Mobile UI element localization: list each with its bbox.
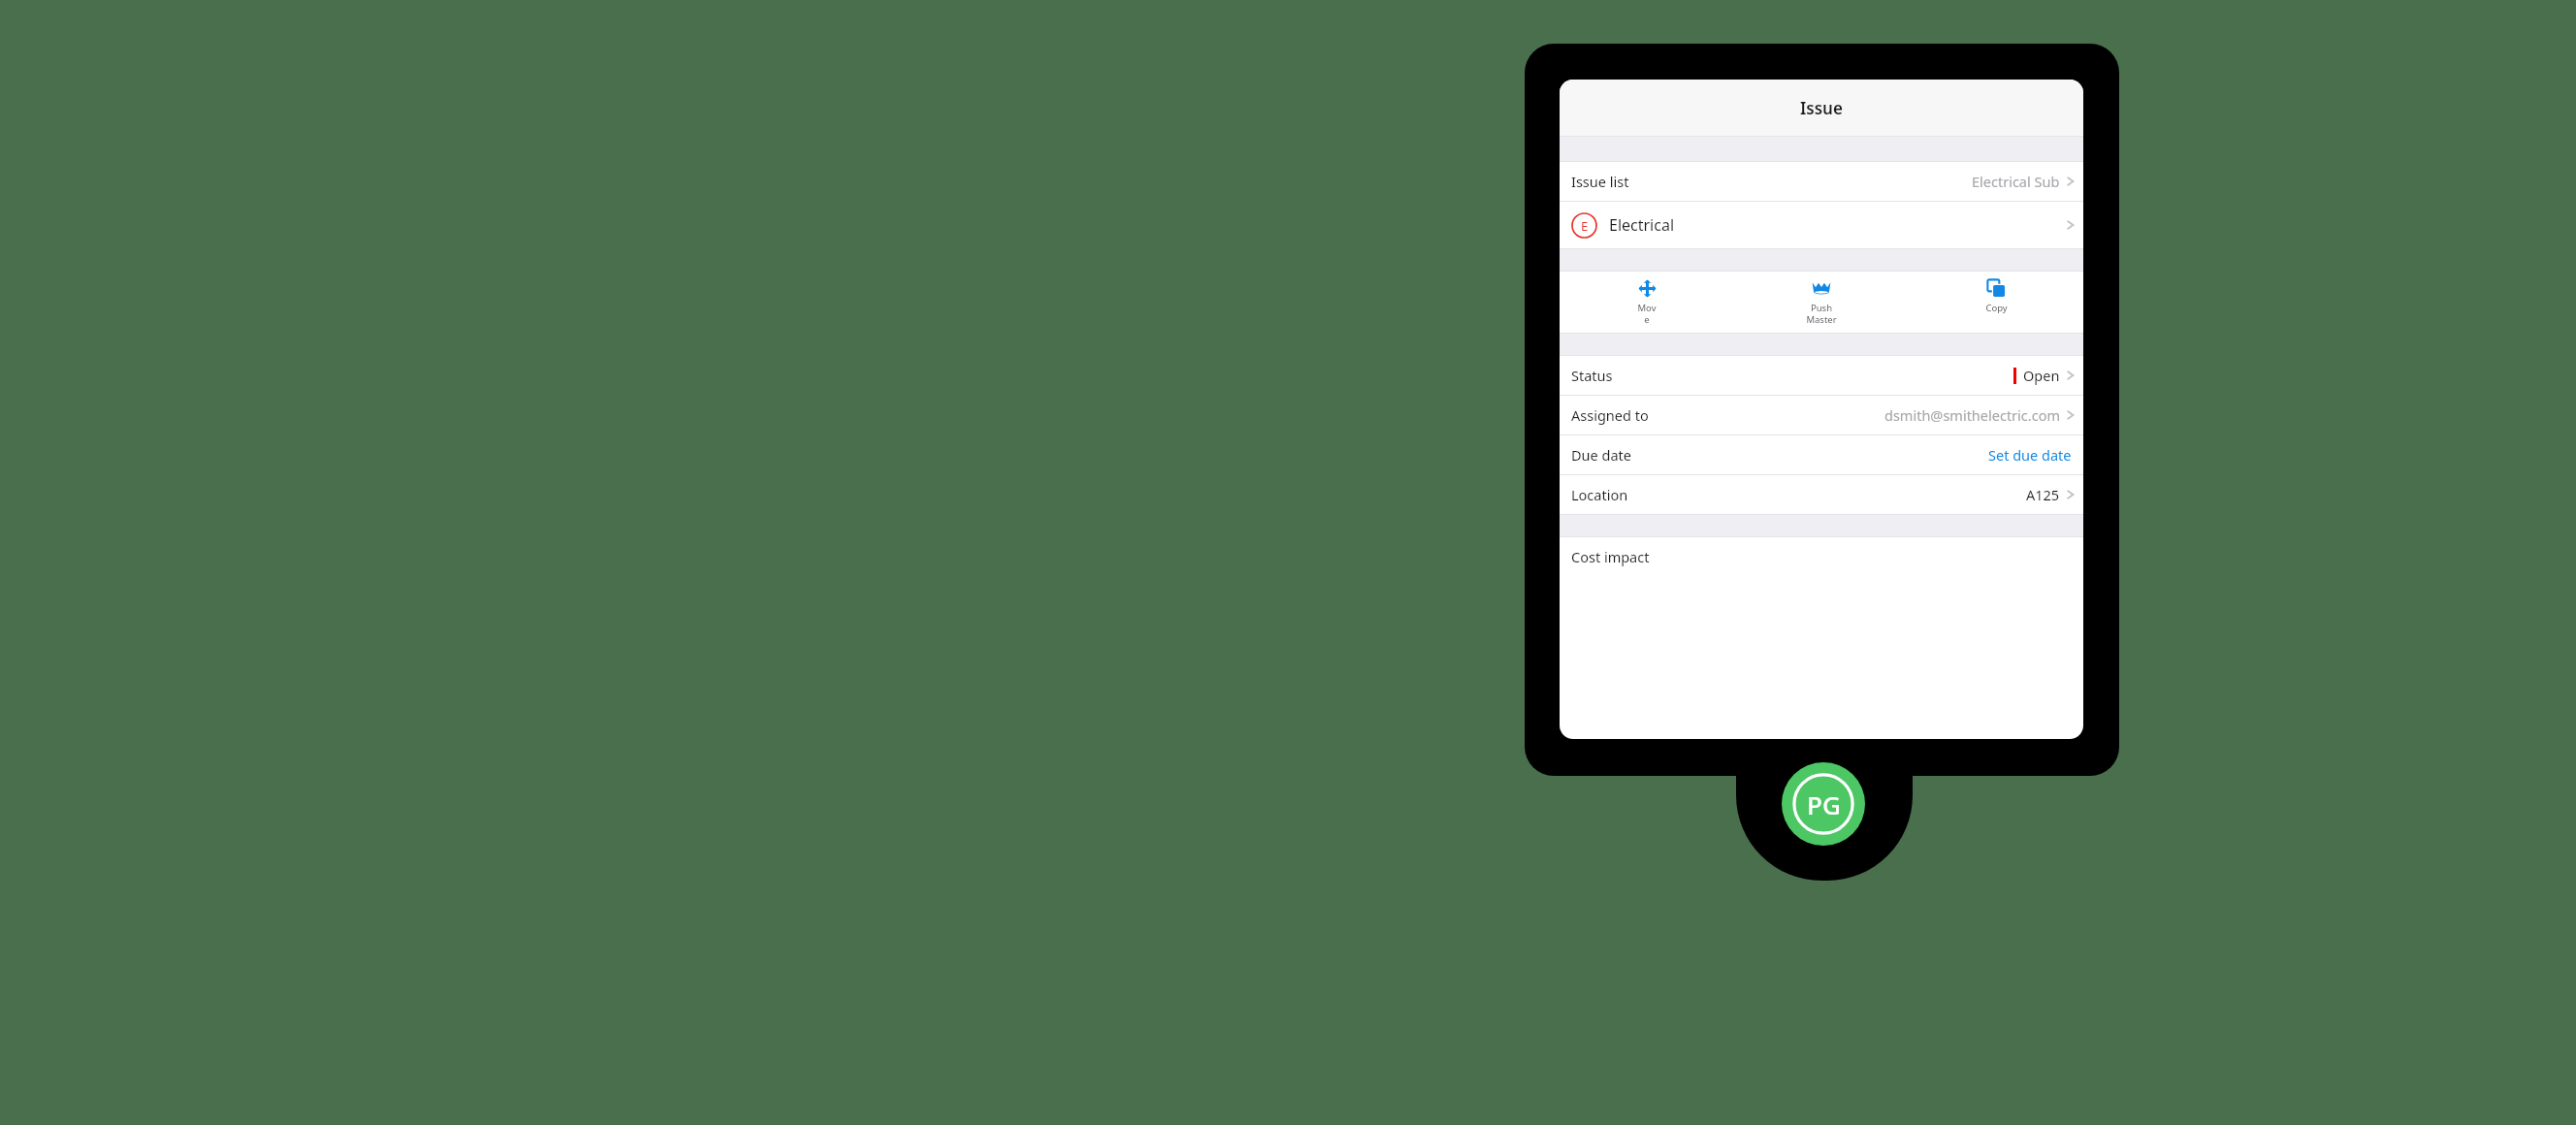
button[interactable]: Push Master (1734, 272, 1909, 333)
staticText: Push Master (1806, 302, 1837, 326)
button[interactable]: Assigned to (1560, 396, 2083, 434)
button[interactable]: Copy (1909, 272, 2083, 333)
button[interactable]: Due date (1560, 435, 2083, 474)
staticText: Electrical Sub (1972, 172, 2060, 191)
staticText: Copy (1985, 302, 2008, 314)
button[interactable]: E (1560, 202, 2083, 248)
staticText: Cost impact (1571, 547, 1650, 566)
staticText: Issue list (1571, 172, 1629, 191)
button[interactable]: Status (1560, 356, 2083, 395)
staticText: Issue (1800, 97, 1843, 119)
staticText: Assigned to (1571, 405, 1649, 425)
button[interactable]: Profile PG (1782, 762, 1865, 846)
staticText: Open (2023, 366, 2060, 385)
staticText: Location (1571, 485, 1628, 504)
staticText: Set due date (1988, 445, 2072, 465)
button[interactable]: Cost impact (1560, 537, 2083, 576)
staticText: dsmith@smithelectric.com (1884, 405, 2060, 425)
staticText: E (1581, 217, 1589, 235)
staticText: Status (1571, 366, 1613, 385)
button[interactable]: Mov e (1560, 272, 1734, 333)
staticText: Due date (1571, 445, 1631, 465)
staticText: Mov e (1637, 302, 1657, 326)
button[interactable]: Issue list (1560, 162, 2083, 201)
staticText: Electrical (1609, 214, 1675, 236)
button[interactable]: Location (1560, 475, 2083, 514)
staticText: A125 (2026, 485, 2060, 504)
staticText: PG (1807, 787, 1841, 821)
